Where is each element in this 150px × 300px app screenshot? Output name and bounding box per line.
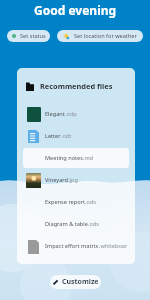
staticText: Customize	[62, 277, 99, 287]
button[interactable]: Diagram & table	[23, 214, 129, 234]
button[interactable]: Expense report	[23, 192, 129, 212]
staticText: Impact effort matrix	[45, 242, 99, 250]
button[interactable]: Vineyard	[23, 170, 129, 190]
staticText: Vineyard	[45, 176, 68, 184]
staticText: .odt	[61, 132, 72, 140]
staticText: Letter	[45, 132, 61, 140]
staticText: .whiteboard	[99, 242, 129, 250]
staticText: Elegant	[45, 110, 65, 118]
staticText: Expense report	[45, 198, 85, 206]
staticText: .odp	[65, 110, 77, 118]
staticText: Set status	[20, 32, 46, 40]
staticText: .jpg	[68, 176, 78, 184]
button[interactable]: Set status	[7, 30, 50, 42]
button[interactable]: Meeting notes	[23, 148, 129, 168]
button[interactable]: Letter	[23, 126, 129, 146]
staticText: Meeting notes	[45, 154, 83, 162]
staticText: Diagram & table	[45, 220, 88, 228]
button[interactable]: Set location for weather	[57, 30, 143, 42]
button[interactable]: Customize	[50, 275, 101, 289]
button[interactable]: Impact effort matrix	[23, 236, 129, 256]
staticText: .ods	[85, 198, 97, 206]
staticText: .md	[83, 154, 94, 162]
staticText: Recommended files	[40, 81, 113, 91]
staticText: .ods	[88, 220, 100, 228]
staticText: Good evening	[34, 2, 117, 18]
staticText: Set location for weather	[74, 32, 137, 40]
button[interactable]: Elegant	[23, 104, 129, 124]
